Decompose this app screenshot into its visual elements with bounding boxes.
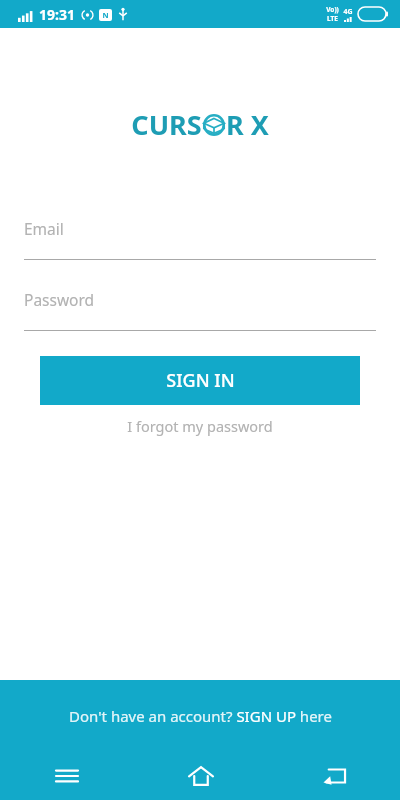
button[interactable]: Recent apps	[0, 752, 134, 800]
button[interactable]: SIGN IN	[40, 356, 360, 405]
staticText: LTE	[327, 14, 338, 23]
staticText: Vo))	[326, 5, 339, 14]
staticText: Email	[24, 218, 64, 239]
button[interactable]: Email	[24, 211, 376, 260]
button[interactable]: Home	[134, 752, 267, 800]
staticText: Don't have an account? SIGN UP here	[69, 706, 332, 726]
staticText: CURS	[131, 106, 202, 143]
staticText: 4G	[343, 7, 353, 17]
staticText: 19:31	[39, 5, 75, 24]
staticText: R X	[226, 106, 269, 143]
staticText: I forgot my password	[127, 416, 273, 436]
button[interactable]: Back	[267, 752, 400, 800]
staticText: Password	[24, 289, 95, 310]
button[interactable]: Password	[24, 282, 376, 331]
button[interactable]: Don't have an account? SIGN UP here	[0, 680, 400, 752]
staticText: SIGN IN	[166, 368, 235, 393]
staticText: N	[102, 10, 109, 20]
button[interactable]: I forgot my password	[0, 416, 400, 436]
